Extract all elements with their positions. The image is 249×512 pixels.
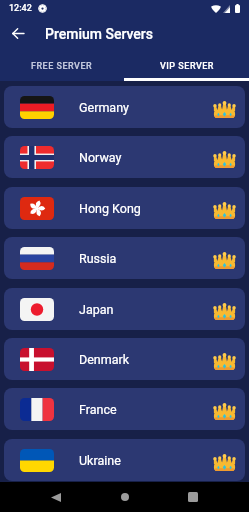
- staticText: Germany: [79, 100, 129, 115]
- button[interactable]: Ukraine: [4, 439, 245, 481]
- staticText: VIP SERVER: [160, 61, 214, 72]
- button[interactable]: Russia: [4, 237, 245, 279]
- staticText: France: [79, 402, 117, 417]
- button[interactable]: Japan: [4, 288, 245, 330]
- staticText: Hong Kong: [79, 201, 141, 216]
- staticText: Russia: [79, 251, 117, 266]
- button[interactable]: Back: [22, 482, 90, 512]
- staticText: 12:42: [9, 3, 32, 14]
- staticText: FREE SERVER: [31, 61, 93, 72]
- staticText: Japan: [79, 302, 114, 317]
- staticText: Norway: [79, 150, 122, 165]
- button[interactable]: VIP SERVER: [124, 49, 249, 81]
- button[interactable]: Home: [91, 482, 159, 512]
- button[interactable]: Back: [6, 21, 30, 45]
- staticText: Ukraine: [79, 453, 121, 468]
- staticText: Premium Servers: [45, 26, 154, 42]
- button[interactable]: Norway: [4, 136, 245, 178]
- button[interactable]: FREE SERVER: [0, 49, 124, 81]
- button[interactable]: France: [4, 388, 245, 430]
- button[interactable]: Denmark: [4, 338, 245, 380]
- button[interactable]: Germany: [4, 86, 245, 128]
- button[interactable]: Recents: [159, 482, 227, 512]
- staticText: Denmark: [79, 352, 130, 367]
- button[interactable]: Hong Kong: [4, 187, 245, 229]
